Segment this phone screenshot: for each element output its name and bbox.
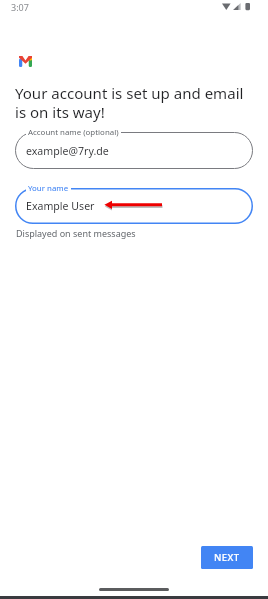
staticText: example@7ry.de bbox=[26, 144, 109, 158]
button[interactable]: Account name (optional) bbox=[15, 132, 253, 169]
staticText: Your account is set up and email is on i… bbox=[15, 83, 253, 122]
staticText: NEXT bbox=[214, 551, 240, 564]
staticText: Your name bbox=[28, 183, 69, 194]
staticText: Account name (optional) bbox=[28, 127, 119, 138]
button[interactable]: Your name bbox=[15, 188, 253, 224]
staticText: Example User bbox=[26, 199, 95, 213]
staticText: 3:07 bbox=[11, 1, 29, 13]
staticText: Displayed on sent messages bbox=[16, 227, 136, 239]
button[interactable]: NEXT bbox=[201, 546, 253, 569]
